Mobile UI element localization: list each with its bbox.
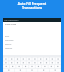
staticText: Rent: [5, 35, 10, 38]
staticText: Transactions: [0, 6, 64, 10]
staticText: Groceries: [5, 39, 14, 42]
staticText: Internet: [5, 47, 13, 50]
button[interactable]: Add Transaction: [3, 18, 61, 22]
button[interactable]: Groceries: [5, 38, 61, 42]
staticText: Payee Name: [5, 23, 17, 26]
staticText: Auto Fill Frequent: [0, 2, 64, 6]
staticText: Add Transaction: [4, 19, 19, 22]
staticText: Electric: [5, 43, 12, 46]
button[interactable]: Internet: [5, 46, 61, 50]
button[interactable]: Rent: [5, 34, 61, 38]
button[interactable]: Keyboard: [3, 55, 61, 72]
button[interactable]: Electric: [5, 42, 61, 46]
